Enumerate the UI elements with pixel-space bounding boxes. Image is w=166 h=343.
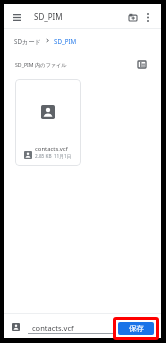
staticText: SD_PIM bbox=[54, 37, 77, 45]
button[interactable]: Switch view bbox=[134, 56, 150, 72]
staticText: SD_PIM 内のファイル bbox=[15, 61, 67, 68]
button[interactable]: Navigation menu bbox=[9, 9, 25, 25]
staticText: contacts.vcf bbox=[35, 145, 68, 153]
button[interactable]: Create new folder bbox=[125, 9, 141, 25]
button[interactable]: More options bbox=[140, 9, 156, 25]
button[interactable]: 保存 bbox=[118, 322, 154, 335]
button[interactable]: contacts.vcf bbox=[28, 319, 113, 334]
staticText: 保存 bbox=[129, 324, 144, 333]
staticText: contacts.vcf bbox=[32, 323, 74, 333]
button[interactable]: SDカード bbox=[14, 37, 41, 45]
staticText: 2.85 KB 11月1日 bbox=[35, 153, 72, 159]
staticText: SD_PIM bbox=[34, 11, 63, 22]
button[interactable]: contacts.vcf bbox=[15, 79, 81, 166]
button[interactable]: SD_PIM bbox=[54, 37, 77, 45]
staticText: SDカード bbox=[14, 37, 41, 45]
